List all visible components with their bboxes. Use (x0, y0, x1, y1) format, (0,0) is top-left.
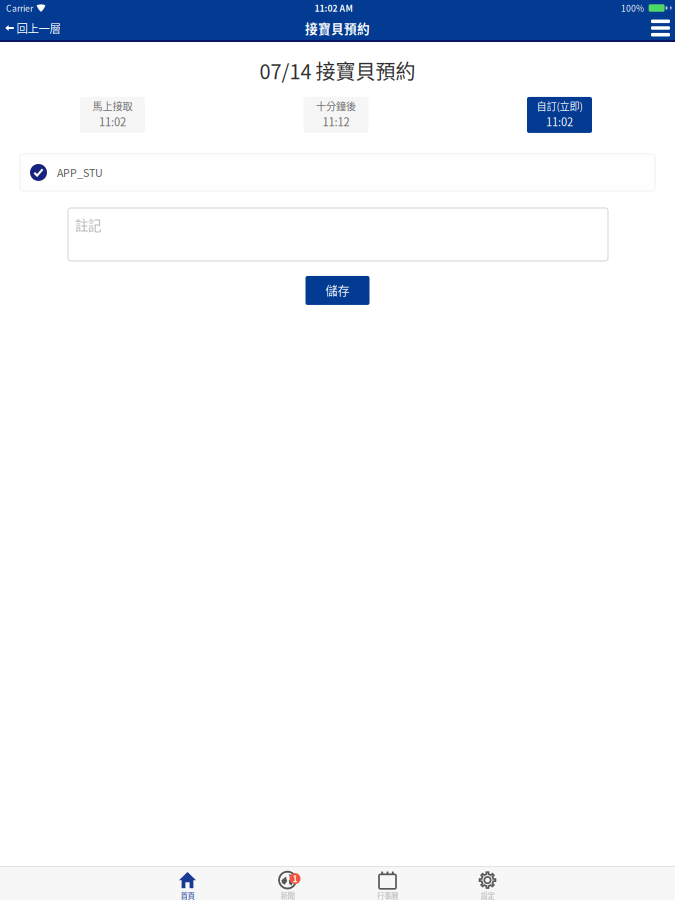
staticText: 回上一層 (16, 20, 60, 36)
staticText: APP_STU (57, 165, 103, 180)
staticText: Carrier (6, 2, 33, 14)
button[interactable]: 十分鐘後 (303, 97, 368, 133)
button[interactable]: Menu (642, 16, 675, 40)
staticText: 設定 (480, 890, 494, 900)
staticText: 接寶貝預約 (305, 19, 370, 37)
button[interactable]: 行事曆 (337, 867, 437, 900)
button[interactable]: 回上一層 (0, 16, 68, 40)
staticText: 11:12 (322, 113, 349, 129)
button[interactable]: 儲存 (305, 276, 369, 305)
button[interactable]: 馬上接取 (80, 97, 145, 133)
button[interactable]: 設定 (437, 867, 537, 900)
staticText: 新聞 (280, 890, 294, 900)
button[interactable]: 自訂(立即) (527, 97, 592, 133)
staticText: 11:02 (546, 113, 573, 129)
staticText: 自訂(立即) (536, 98, 582, 113)
staticText: 行事曆 (377, 890, 398, 900)
staticText: 註記 (75, 215, 101, 234)
staticText: 十分鐘後 (316, 98, 356, 113)
staticText: 首頁 (180, 890, 194, 900)
staticText: 馬上接取 (92, 98, 132, 113)
staticText: 儲存 (325, 282, 349, 299)
staticText: 100% (621, 2, 644, 14)
button[interactable]: 首頁 (137, 867, 237, 900)
button[interactable]: 1 (237, 867, 337, 900)
staticText: 11:02 (99, 113, 126, 129)
staticText: 07/14 接寶貝預約 (259, 56, 415, 85)
staticText: 1 (292, 872, 297, 885)
staticText: 11:02 AM (314, 2, 352, 14)
